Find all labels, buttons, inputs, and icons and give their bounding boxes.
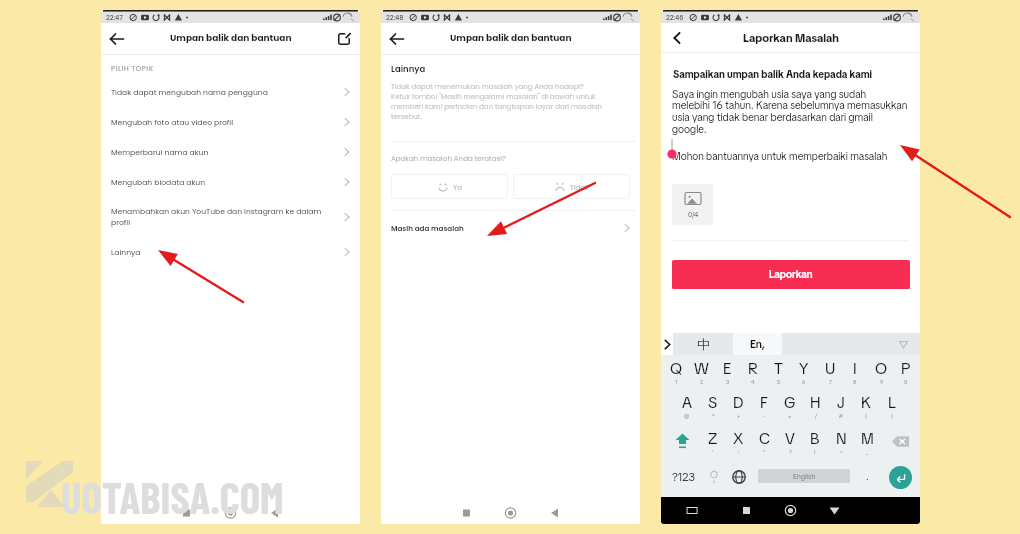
staticText: : (738, 448, 740, 455)
button[interactable]: C (753, 428, 775, 456)
button[interactable]: Enter (889, 466, 912, 489)
staticText: T (774, 358, 783, 378)
staticText: _ (866, 448, 869, 455)
button[interactable]: Backspace (889, 430, 911, 452)
button[interactable]: H (804, 392, 826, 420)
button[interactable]: Tidak (513, 174, 630, 199)
button[interactable]: N (830, 428, 852, 456)
staticText: Lainnya (391, 63, 426, 75)
button[interactable]: U (819, 358, 841, 386)
button[interactable]: M (856, 428, 878, 456)
staticText: H (810, 392, 821, 412)
staticText: D (733, 392, 744, 412)
staticText: Mengubah foto atau video profil (111, 117, 328, 128)
button[interactable]: Masih ada masalah (381, 211, 640, 244)
staticText: * (712, 412, 715, 419)
button[interactable]: P (895, 358, 917, 386)
button[interactable]: I (844, 358, 866, 386)
staticText: ? (789, 448, 792, 455)
button[interactable] (782, 333, 920, 355)
staticText: En, (750, 337, 765, 351)
staticText: Memperbarui nama akun (111, 147, 328, 158)
staticText: J (837, 392, 845, 412)
button[interactable]: ?123 (665, 465, 701, 488)
button[interactable]: V (779, 428, 801, 456)
button[interactable]: Laporkan (672, 260, 910, 289)
button[interactable]: D (727, 392, 749, 420)
button[interactable]: G (779, 392, 801, 420)
button[interactable]: W (690, 358, 712, 386)
button[interactable]: Menambahkan akun YouTube dan Instagram k… (101, 197, 360, 237)
button[interactable]: . (859, 465, 875, 488)
button[interactable]: J (830, 392, 852, 420)
button[interactable]: R (742, 358, 764, 386)
button[interactable]: Change keyboard language (728, 465, 750, 488)
staticText: Laporkan Masalah (743, 30, 839, 45)
staticText: UOTABISA.COM (61, 471, 284, 523)
button[interactable]: B (804, 428, 826, 456)
staticText: G (784, 392, 796, 412)
staticText: ) (891, 412, 893, 419)
button[interactable]: En, (733, 333, 782, 355)
staticText: B (810, 428, 820, 448)
staticText: Mengubah biodata akun (111, 177, 328, 188)
button[interactable]: Memperbarui nama akun (101, 137, 360, 167)
button[interactable]: T (767, 358, 789, 386)
button[interactable]: X (727, 428, 749, 456)
button[interactable]: S (702, 392, 724, 420)
button[interactable]: Emoji (704, 465, 724, 488)
button[interactable]: English (758, 469, 850, 483)
staticText: ' (712, 448, 714, 455)
staticText: X (733, 428, 744, 448)
button[interactable]: Mengubah biodata akun (101, 167, 360, 197)
staticText: N (836, 428, 847, 448)
staticText: E (723, 358, 732, 378)
button[interactable]: K (855, 392, 877, 420)
button[interactable]: O (870, 358, 892, 386)
staticText: Apakah masalah Anda teratasi? (391, 154, 506, 164)
button[interactable]: Z (702, 428, 724, 456)
staticText: = (788, 412, 792, 419)
staticText: A (682, 392, 692, 412)
staticText: + (737, 412, 741, 419)
staticText: Umpan balik dan bantuan (450, 32, 572, 45)
staticText: - (763, 412, 766, 419)
staticText: 9 (880, 378, 884, 385)
button[interactable]: Write feedback (335, 30, 353, 48)
staticText: Mohon bantuannya untuk memperbaiki masal… (672, 149, 888, 163)
button[interactable]: Tidak dapat mengubah nama pengguna (101, 77, 360, 107)
button[interactable]: Expand toolbar (661, 333, 673, 355)
button[interactable]: Add photo (672, 184, 713, 225)
button[interactable]: E (716, 358, 738, 386)
button[interactable]: Ya (391, 174, 508, 199)
button[interactable]: Back (383, 25, 411, 53)
button[interactable]: Shift (671, 429, 693, 451)
staticText: 3 (726, 378, 730, 385)
staticText: W (694, 358, 709, 378)
staticText: I (853, 358, 857, 378)
button[interactable]: F (753, 392, 775, 420)
staticText: Masih ada masalah (391, 223, 622, 233)
button[interactable]: Lainnya (101, 237, 360, 267)
staticText: PILIH TOPIK (111, 64, 154, 74)
staticText: C (759, 428, 770, 448)
button[interactable]: Back (666, 28, 686, 48)
staticText: L (888, 392, 896, 412)
button[interactable]: A (676, 392, 698, 420)
button[interactable]: L (881, 392, 903, 420)
staticText: @ (684, 412, 690, 419)
staticText: # (839, 412, 843, 419)
staticText: Laporkan (769, 268, 813, 282)
staticText: K (861, 392, 871, 412)
button[interactable]: 中 (673, 333, 733, 355)
button[interactable]: Back (103, 25, 131, 53)
staticText: Q (670, 358, 683, 378)
staticText: 22:47 (106, 13, 123, 22)
staticText: Sampaikan umpan balik Anda kepada kami (673, 68, 873, 81)
staticText: U (825, 358, 836, 378)
button[interactable]: Mengubah foto atau video profil (101, 107, 360, 137)
button[interactable]: Q (665, 358, 687, 386)
staticText: Ya (453, 182, 463, 192)
button[interactable]: Y (793, 358, 815, 386)
staticText: ( (865, 412, 867, 419)
